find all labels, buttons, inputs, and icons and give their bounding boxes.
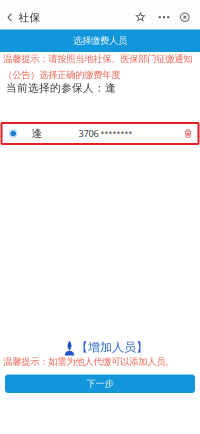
staticText: 当前选择的参保人：逢: [6, 81, 116, 95]
staticText: 温馨提示：请按照当地社保、医保部门征缴通知（公告）选择正确的缴费年度: [3, 53, 192, 81]
staticText: 下一步: [86, 378, 113, 389]
button[interactable]: 更多: [153, 4, 175, 30]
button[interactable]: 收藏: [129, 4, 151, 30]
button[interactable]: 下一步: [5, 374, 195, 393]
staticText: 社保: [18, 11, 40, 24]
button[interactable]: 社保: [0, 4, 42, 30]
staticText: 3706: [78, 127, 98, 140]
button[interactable]: 【增加人员】: [64, 340, 136, 358]
button[interactable]: 逢: [1, 123, 198, 144]
staticText: 温馨提示：如需为他人代缴可以添加人员。: [3, 356, 174, 367]
staticText: 【增加人员】: [76, 340, 148, 355]
button[interactable]: 关闭: [174, 4, 196, 30]
staticText: 选择缴费人员: [73, 35, 127, 46]
staticText: 逢: [31, 127, 42, 140]
staticText: ********: [100, 129, 132, 138]
